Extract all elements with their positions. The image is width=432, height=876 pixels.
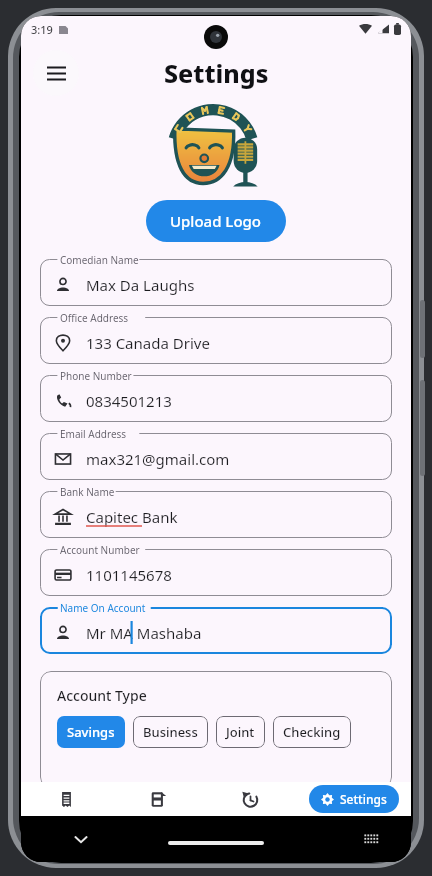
button[interactable]: Email Address bbox=[40, 433, 392, 480]
staticText: Checking bbox=[283, 723, 341, 741]
staticText: Max Da Laughs bbox=[86, 275, 195, 295]
staticText: 133 Canada Drive bbox=[86, 333, 210, 353]
button[interactable]: Comedian Name bbox=[40, 259, 392, 306]
button[interactable]: Receipts bbox=[21, 782, 112, 816]
button[interactable]: Office Address bbox=[40, 317, 392, 364]
staticText: 0834501213 bbox=[86, 391, 172, 411]
staticText: Account Type bbox=[57, 686, 147, 705]
button[interactable]: Savings bbox=[57, 716, 125, 748]
button[interactable]: Checking bbox=[273, 716, 351, 748]
staticText: Comedian Name bbox=[60, 253, 139, 267]
staticText: Bank Name bbox=[60, 485, 115, 499]
button[interactable]: Open menu bbox=[33, 50, 79, 96]
button[interactable]: Bank Name bbox=[40, 491, 392, 538]
staticText: max321@gmail.com bbox=[86, 449, 230, 469]
staticText: Office Address bbox=[60, 311, 129, 325]
staticText: Email Address bbox=[60, 427, 127, 441]
staticText: Mr MA Mashaba bbox=[86, 623, 202, 643]
staticText: Phone Number bbox=[60, 369, 132, 383]
staticText: Business bbox=[143, 723, 198, 741]
staticText: Savings bbox=[67, 723, 115, 741]
staticText: Upload Logo bbox=[170, 211, 262, 231]
staticText: 3:19 bbox=[31, 22, 53, 37]
staticText: Capitec Bank bbox=[86, 507, 178, 527]
button[interactable]: Joint bbox=[216, 716, 265, 748]
button[interactable]: Upload Logo bbox=[146, 200, 286, 242]
button[interactable]: Business bbox=[133, 716, 208, 748]
staticText: Account Number bbox=[60, 543, 140, 557]
button[interactable]: Invoices bbox=[112, 782, 204, 816]
button[interactable]: Phone Number bbox=[40, 375, 392, 422]
staticText: Settings bbox=[164, 56, 269, 90]
staticText: Name On Account bbox=[60, 601, 146, 615]
button[interactable]: Settings bbox=[309, 785, 399, 813]
staticText: Settings bbox=[340, 791, 387, 807]
button[interactable]: History bbox=[204, 782, 296, 816]
button[interactable]: Name On Account bbox=[40, 607, 392, 654]
staticText: 1101145678 bbox=[86, 565, 172, 585]
staticText: Joint bbox=[226, 723, 255, 741]
button[interactable]: Account Number bbox=[40, 549, 392, 596]
